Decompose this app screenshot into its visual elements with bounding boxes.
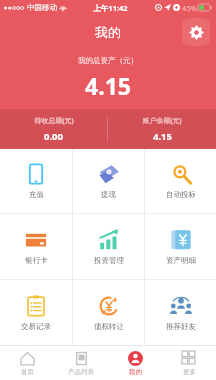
- button[interactable]: 我的: [108, 346, 162, 380]
- staticText: 4.15: [0, 70, 216, 101]
- button[interactable]: 推荐好友: [145, 280, 216, 345]
- button[interactable]: 待收总额(元): [0, 109, 107, 149]
- staticText: 45%: [182, 3, 197, 13]
- staticText: 4.15: [153, 130, 172, 143]
- staticText: 交易记录: [21, 322, 51, 331]
- staticText: 自动投标: [166, 190, 196, 199]
- button[interactable]: 资产明细: [145, 214, 216, 279]
- staticText: 银行卡: [25, 256, 48, 265]
- button[interactable]: 交易记录: [0, 280, 72, 345]
- button[interactable]: 债权转让: [73, 280, 144, 345]
- button[interactable]: 银行卡: [0, 214, 72, 279]
- button[interactable]: 自动投标: [145, 149, 216, 213]
- button[interactable]: 充值: [0, 149, 72, 213]
- staticText: 债权转让: [94, 322, 124, 331]
- staticText: 更多: [183, 368, 196, 376]
- staticText: 待收总额(元): [34, 116, 74, 126]
- staticText: 账户余额(元): [142, 116, 182, 126]
- staticText: 上午11:42: [93, 3, 128, 13]
- button[interactable]: 更多: [162, 346, 216, 380]
- staticText: 我的总资产（元）: [0, 56, 216, 65]
- button[interactable]: 产品列表: [54, 346, 108, 380]
- staticText: 中国移动: [27, 3, 57, 12]
- staticText: 资产明细: [166, 256, 196, 265]
- staticText: 提现: [101, 190, 116, 199]
- staticText: 首页: [21, 368, 34, 376]
- staticText: 推荐好友: [166, 322, 196, 331]
- staticText: 我的: [129, 368, 142, 376]
- button[interactable]: 账户余额(元): [108, 109, 216, 149]
- staticText: 投资管理: [94, 256, 124, 265]
- staticText: 充值: [29, 190, 44, 199]
- button[interactable]: 投资管理: [73, 214, 144, 279]
- button[interactable]: 首页: [0, 346, 54, 380]
- button[interactable]: 提现: [73, 149, 144, 213]
- staticText: 产品列表: [68, 368, 94, 376]
- staticText: 我的: [95, 24, 121, 40]
- staticText: 0.00: [44, 130, 63, 143]
- button[interactable]: Settings: [182, 18, 210, 46]
